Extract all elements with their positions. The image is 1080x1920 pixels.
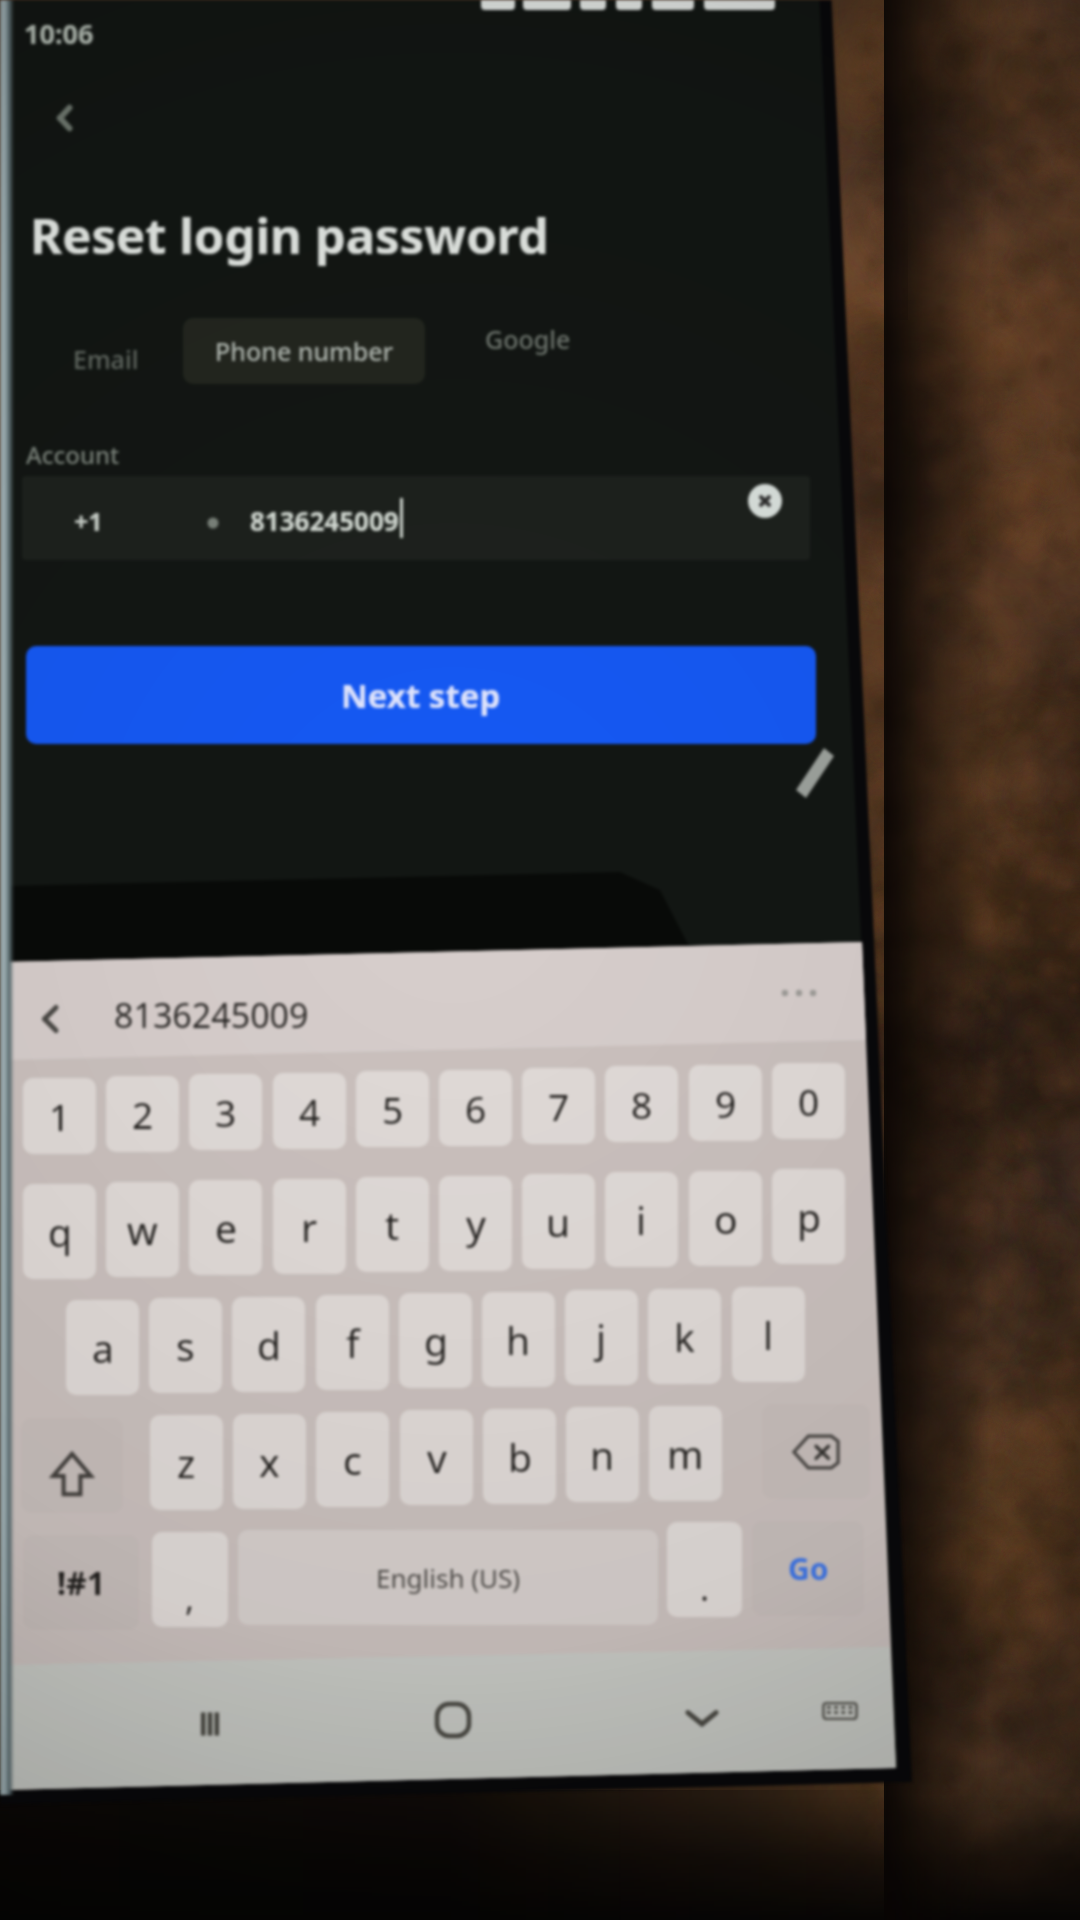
button[interactable]: e xyxy=(189,1180,262,1275)
button[interactable]: Back xyxy=(32,86,96,150)
button[interactable]: w xyxy=(106,1182,179,1277)
staticText: s xyxy=(176,1319,195,1372)
staticText: k xyxy=(674,1310,695,1363)
button[interactable]: m xyxy=(649,1406,722,1501)
button[interactable]: v xyxy=(400,1410,473,1505)
button[interactable]: q xyxy=(23,1184,96,1279)
staticText: 5 xyxy=(382,1084,404,1134)
button[interactable]: i xyxy=(605,1172,678,1267)
button[interactable]: g xyxy=(399,1293,472,1388)
button[interactable]: j xyxy=(565,1290,638,1385)
staticText: q xyxy=(48,1205,72,1258)
button[interactable]: s xyxy=(149,1298,222,1393)
staticText: y xyxy=(466,1197,486,1250)
staticText: b xyxy=(508,1430,532,1483)
staticText: +1 xyxy=(74,504,103,538)
button[interactable]: 8136245009 xyxy=(114,992,309,1038)
staticText: 8 xyxy=(631,1079,653,1129)
staticText: . xyxy=(700,1565,710,1611)
button[interactable]: Email xyxy=(50,330,162,388)
button[interactable]: Home xyxy=(420,1687,486,1753)
button[interactable]: 8 xyxy=(605,1066,678,1142)
button[interactable]: 5 xyxy=(356,1071,429,1147)
staticText: Email xyxy=(73,342,139,376)
button[interactable]: f xyxy=(316,1295,389,1390)
staticText: t xyxy=(385,1198,400,1251)
button[interactable]: 3 xyxy=(189,1074,262,1150)
button[interactable]: Previous suggestion xyxy=(20,988,82,1050)
staticText: m xyxy=(667,1427,704,1480)
staticText: 4 xyxy=(299,1086,321,1136)
staticText: i xyxy=(636,1193,647,1246)
button[interactable]: Clear text xyxy=(748,484,782,518)
button[interactable]: u xyxy=(522,1174,595,1269)
button[interactable]: 0 xyxy=(772,1063,845,1139)
button[interactable]: x xyxy=(233,1414,306,1509)
staticText: Reset login password xyxy=(30,202,549,269)
staticText: a xyxy=(92,1321,114,1374)
button[interactable]: k xyxy=(648,1289,721,1384)
button[interactable]: . xyxy=(667,1522,742,1617)
staticText: 0 xyxy=(798,1076,820,1126)
button[interactable]: l xyxy=(732,1287,805,1382)
staticText: l xyxy=(763,1308,774,1361)
staticText: w xyxy=(127,1203,158,1256)
staticText: o xyxy=(714,1192,738,1245)
button[interactable]: h xyxy=(482,1292,555,1387)
staticText: 9 xyxy=(715,1078,737,1128)
button[interactable]: t xyxy=(356,1177,429,1272)
button[interactable]: p xyxy=(772,1169,845,1264)
staticText: j xyxy=(596,1311,607,1364)
button[interactable]: r xyxy=(273,1179,346,1274)
button[interactable]: More options xyxy=(768,962,830,1024)
button[interactable]: Next step xyxy=(26,646,816,744)
staticText: u xyxy=(546,1195,571,1248)
staticText: !#1 xyxy=(57,1561,106,1605)
staticText: 3 xyxy=(215,1087,237,1137)
button[interactable]: b xyxy=(483,1409,556,1504)
staticText: 1 xyxy=(49,1091,71,1141)
staticText: Go xyxy=(788,1548,829,1589)
button[interactable]: 7 xyxy=(522,1068,595,1144)
button[interactable]: Hide keyboard xyxy=(669,1684,735,1750)
button[interactable]: a xyxy=(66,1300,139,1395)
button[interactable]: n xyxy=(566,1407,639,1502)
button[interactable]: !#1 xyxy=(23,1535,139,1630)
button[interactable]: z xyxy=(150,1415,223,1510)
staticText: 2 xyxy=(132,1089,154,1139)
button[interactable]: y xyxy=(439,1176,512,1271)
staticText: English (US) xyxy=(376,1560,521,1595)
button[interactable]: 6 xyxy=(439,1070,512,1146)
button[interactable]: English (US) xyxy=(238,1530,658,1625)
staticText: 10:06 xyxy=(24,15,94,52)
button[interactable]: Backspace xyxy=(762,1404,870,1499)
staticText: Phone number xyxy=(215,334,394,368)
button[interactable]: 2 xyxy=(106,1076,179,1152)
staticText: n xyxy=(590,1428,615,1481)
button[interactable]: 1 xyxy=(23,1078,96,1154)
button[interactable]: +1 xyxy=(22,476,810,560)
button[interactable]: Recent apps xyxy=(177,1691,243,1757)
staticText: 6 xyxy=(465,1083,487,1133)
button[interactable]: Phone number xyxy=(183,318,425,384)
staticText: 7 xyxy=(548,1081,570,1131)
button[interactable]: c xyxy=(316,1412,389,1507)
button[interactable]: , xyxy=(152,1532,228,1627)
button[interactable]: 4 xyxy=(273,1073,346,1149)
staticText: v xyxy=(427,1431,447,1484)
staticText: z xyxy=(177,1436,196,1489)
staticText: c xyxy=(343,1433,362,1486)
button[interactable]: Google xyxy=(462,310,594,368)
button[interactable]: d xyxy=(232,1297,305,1392)
button[interactable]: o xyxy=(689,1171,762,1266)
button[interactable]: Go xyxy=(752,1521,864,1616)
staticText: p xyxy=(797,1190,821,1243)
staticText: r xyxy=(301,1200,318,1253)
button[interactable]: Change keyboard xyxy=(811,1682,869,1740)
staticText: g xyxy=(424,1314,448,1367)
button[interactable]: 9 xyxy=(689,1065,762,1141)
staticText: Next step xyxy=(341,673,501,718)
button[interactable]: Shift xyxy=(21,1418,123,1513)
staticText: 8136245009 xyxy=(250,503,399,538)
staticText: Account xyxy=(26,438,120,471)
